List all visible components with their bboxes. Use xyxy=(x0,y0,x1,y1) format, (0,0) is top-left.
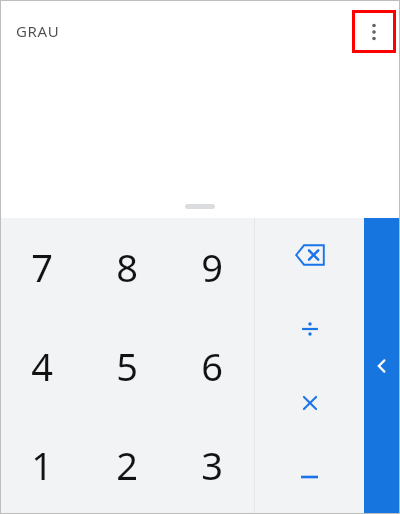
button[interactable]: 2 xyxy=(84,415,169,514)
button[interactable]: More options xyxy=(352,10,396,54)
button[interactable]: Backspace xyxy=(255,218,364,292)
staticText: 8 xyxy=(116,241,138,293)
staticText: 3 xyxy=(201,439,223,491)
button[interactable]: 4 xyxy=(0,316,84,415)
button[interactable]: 6 xyxy=(169,316,254,415)
staticText: 7 xyxy=(31,241,53,293)
staticText: 4 xyxy=(31,340,53,392)
staticText: 2 xyxy=(116,439,138,491)
button[interactable]: 7 xyxy=(0,218,84,316)
button[interactable]: Subtract xyxy=(255,440,364,514)
button[interactable]: 9 xyxy=(169,218,254,316)
staticText: 1 xyxy=(31,439,53,491)
button[interactable]: 1 xyxy=(0,415,84,514)
button[interactable]: Divide xyxy=(255,292,364,366)
staticText: 5 xyxy=(116,340,138,392)
staticText: 9 xyxy=(201,241,223,293)
button[interactable]: 5 xyxy=(84,316,169,415)
button[interactable]: Multiply xyxy=(255,366,364,440)
button[interactable]: Show more operations xyxy=(364,218,400,514)
button[interactable]: 8 xyxy=(84,218,169,316)
staticText: 6 xyxy=(201,340,223,392)
button[interactable]: 3 xyxy=(169,415,254,514)
button[interactable]: Expand pad xyxy=(185,204,215,209)
button[interactable]: GRAU xyxy=(16,21,60,41)
